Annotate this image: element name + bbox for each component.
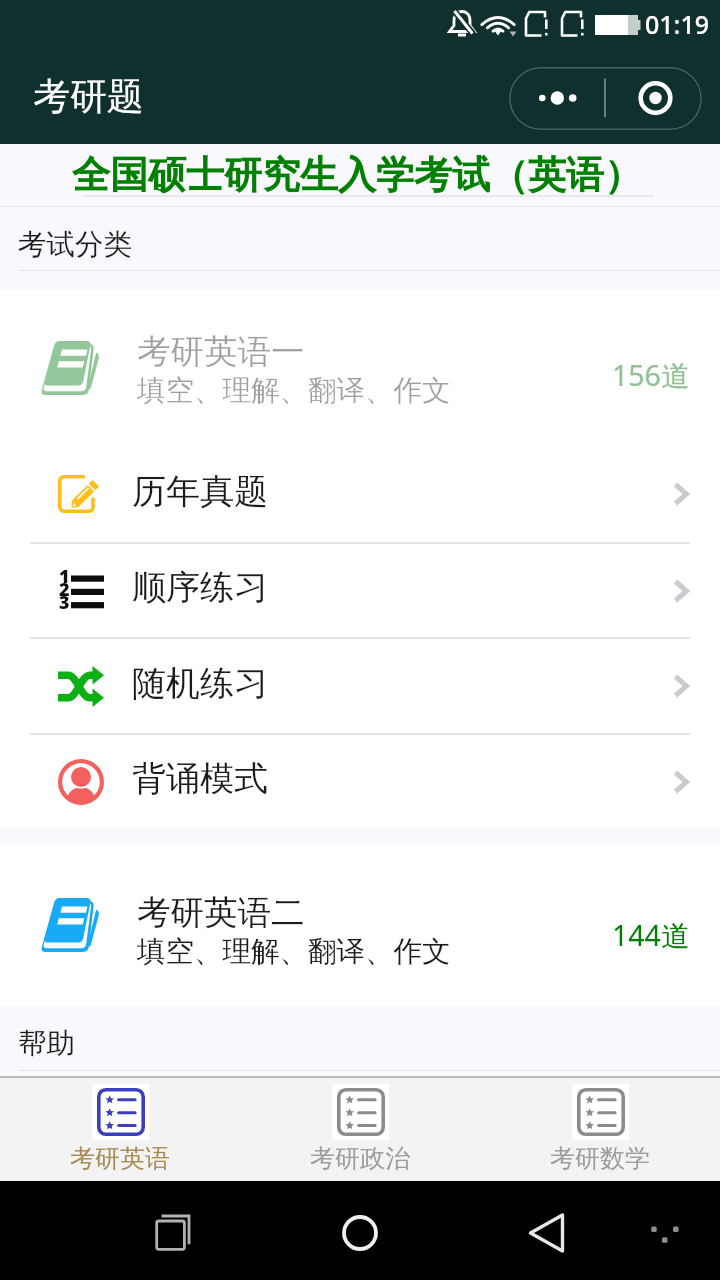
button[interactable]: 随机练习 [0, 639, 720, 733]
button[interactable]: Home [330, 1201, 390, 1261]
staticText: 144道 [612, 916, 690, 955]
button[interactable]: Recent apps [140, 1201, 200, 1261]
staticText: 1 [59, 564, 70, 589]
button[interactable]: 背诵模式 [0, 735, 720, 828]
button[interactable]: 考研英语 [0, 1078, 240, 1181]
staticText: 3 [59, 590, 70, 615]
staticText: 历年真题 [132, 470, 673, 513]
staticText: 随机练习 [132, 662, 673, 705]
button[interactable]: 历年真题 [0, 446, 720, 542]
button[interactable]: 考研政治 [240, 1078, 480, 1181]
staticText: 2 [59, 577, 70, 602]
staticText: 考研数学 [550, 1143, 650, 1174]
staticText: 01:19 [645, 7, 710, 41]
button[interactable]: 1 [0, 544, 720, 637]
staticText: 考研政治 [310, 1143, 410, 1174]
staticText: 156道 [612, 356, 690, 395]
staticText: 背诵模式 [132, 757, 673, 800]
staticText: 全国硕士研究生入学考试（英语） [72, 151, 642, 199]
button[interactable]: More options [509, 67, 702, 130]
staticText: 考研题 [33, 73, 144, 120]
staticText: 帮助 [18, 1026, 75, 1062]
staticText: 考试分类 [18, 227, 132, 263]
staticText: 顺序练习 [132, 566, 673, 609]
staticText: 考研英语一 [137, 331, 305, 373]
button[interactable]: 考研英语一 [0, 290, 720, 446]
button[interactable]: Menu [634, 1201, 694, 1261]
button[interactable]: 考研数学 [480, 1078, 720, 1181]
staticText: 考研英语 [70, 1143, 170, 1174]
staticText: 填空、理解、翻译、作文 [137, 373, 451, 409]
staticText: 考研英语二 [137, 892, 305, 934]
button[interactable]: Back [516, 1201, 576, 1261]
staticText: 填空、理解、翻译、作文 [137, 934, 451, 970]
button[interactable]: 考研英语二 [0, 845, 720, 1006]
